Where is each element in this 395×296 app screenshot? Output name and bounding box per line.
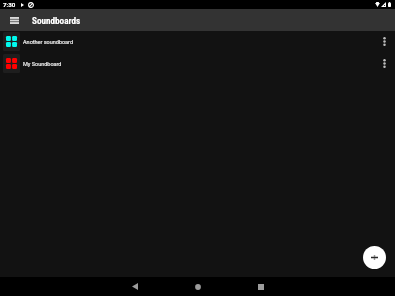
staticText: 7:30 bbox=[3, 1, 16, 8]
staticText: Soundboards bbox=[32, 15, 81, 26]
button[interactable]: Home bbox=[166, 277, 229, 296]
button[interactable]: Open navigation drawer bbox=[0, 9, 28, 31]
button[interactable]: More options bbox=[374, 53, 394, 75]
button[interactable]: More options bbox=[374, 31, 394, 53]
staticText: My Soundboard bbox=[23, 61, 62, 67]
button[interactable]: Add soundboard bbox=[363, 246, 386, 269]
staticText: Another soundboard bbox=[23, 39, 74, 45]
button[interactable]: Another soundboard bbox=[0, 31, 395, 53]
button[interactable]: Back bbox=[103, 277, 166, 296]
button[interactable]: Recent apps bbox=[229, 277, 292, 296]
button[interactable]: My Soundboard bbox=[0, 53, 395, 75]
